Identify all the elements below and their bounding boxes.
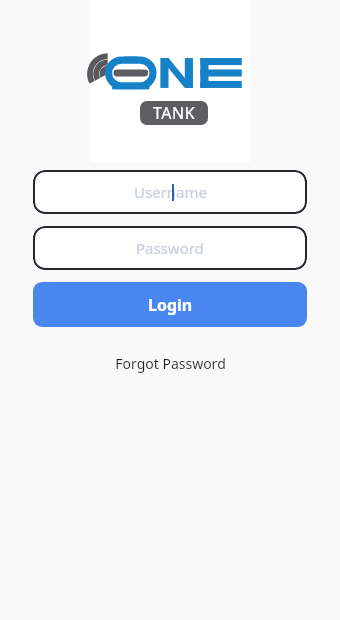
staticText: Login — [148, 294, 193, 316]
button[interactable]: Login — [33, 282, 307, 327]
button[interactable]: Username — [33, 170, 307, 214]
button[interactable]: Forgot Password — [100, 351, 240, 375]
staticText: TANK — [153, 102, 196, 124]
button[interactable]: Password — [33, 226, 307, 270]
staticText: Username — [134, 182, 207, 202]
staticText: Password — [136, 238, 204, 258]
other: One Tank logo — [96, 50, 244, 96]
staticText: Forgot Password — [115, 354, 226, 373]
